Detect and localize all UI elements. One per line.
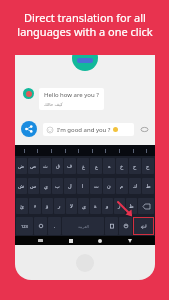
button[interactable]: ي [40, 178, 51, 194]
staticText: ق [56, 163, 60, 169]
staticText: ل [68, 183, 72, 189]
button[interactable]: ب [52, 178, 63, 194]
button[interactable]: ت [90, 178, 102, 194]
button[interactable]: و [102, 198, 113, 214]
button[interactable]: ئ [16, 198, 28, 214]
staticText: ص [30, 163, 37, 169]
button[interactable] [73, 147, 83, 155]
button[interactable]: م [116, 178, 128, 194]
button[interactable]: ق [52, 158, 63, 174]
staticText: و [106, 203, 109, 209]
staticText: Hello how are you ? [44, 91, 99, 99]
button[interactable]: ض [16, 158, 27, 174]
button[interactable] [114, 147, 124, 155]
staticText: ي [44, 183, 48, 189]
button[interactable] [87, 147, 97, 155]
staticText: ؤ [46, 203, 49, 209]
button[interactable]: 123 [16, 217, 33, 235]
staticText: ت [94, 183, 99, 189]
button[interactable]: Share [21, 121, 37, 137]
staticText: ب [55, 183, 60, 189]
staticText: ع [95, 163, 98, 169]
staticText: ، [54, 224, 56, 229]
button[interactable]: I'm good and you ? [47, 123, 130, 136]
button[interactable]: ه [103, 158, 115, 174]
button[interactable] [46, 147, 56, 155]
staticText: ى [82, 203, 86, 209]
button[interactable]: ح [129, 158, 141, 174]
button[interactable]: ة [90, 198, 101, 214]
staticText: ة [94, 203, 97, 209]
button[interactable]: العربية [62, 217, 104, 235]
button[interactable]: Clipboard [105, 217, 118, 235]
staticText: ج [146, 163, 150, 169]
button[interactable]: ش [16, 178, 27, 194]
button[interactable] [141, 147, 151, 155]
button[interactable]: Enter [134, 218, 153, 234]
button[interactable]: ى [78, 198, 89, 214]
button[interactable]: ك [129, 178, 141, 194]
button[interactable]: ظ [126, 198, 137, 214]
staticText: ك [133, 183, 138, 189]
button[interactable]: Back [126, 237, 133, 244]
button[interactable]: Backspace [138, 198, 154, 214]
staticText: ر [58, 203, 61, 209]
button[interactable]: غ [77, 158, 89, 174]
button[interactable]: ث [40, 158, 51, 174]
button[interactable] [32, 147, 42, 155]
staticText: ظ [129, 203, 134, 209]
staticText: م [120, 183, 124, 189]
button[interactable]: Attach [139, 124, 149, 134]
button[interactable] [128, 147, 138, 155]
button[interactable]: ن [103, 178, 115, 194]
button[interactable]: ف [64, 158, 76, 174]
button[interactable]: س [28, 178, 39, 194]
button[interactable] [19, 147, 29, 155]
button[interactable]: Recents [67, 237, 74, 244]
staticText: Direct translation for all languages wit… [17, 10, 153, 39]
staticText: ض [18, 163, 25, 169]
button[interactable]: ط [142, 178, 154, 194]
staticText: ا [82, 183, 84, 189]
staticText: س [30, 183, 37, 189]
button[interactable]: ع [90, 158, 102, 174]
button[interactable]: Keyboard [37, 237, 44, 244]
button[interactable] [100, 147, 110, 155]
staticText: ش [18, 183, 25, 189]
button[interactable]: ؤ [42, 198, 53, 214]
button[interactable]: ، [48, 217, 61, 235]
button[interactable]: Emoji [119, 217, 132, 235]
staticText: ط [146, 183, 151, 189]
button[interactable]: ء [29, 198, 41, 214]
staticText: ن [107, 183, 111, 189]
staticText: I'm good and you ? [57, 126, 111, 134]
button[interactable]: ص [28, 158, 39, 174]
staticText: ئ [20, 203, 24, 209]
staticText: ح [133, 163, 137, 169]
button[interactable]: Home [96, 237, 103, 244]
staticText: ء [34, 203, 37, 209]
staticText: ز [118, 203, 121, 209]
staticText: لا [70, 203, 73, 209]
button[interactable]: Hello how are you ? [23, 88, 104, 110]
staticText: ث [43, 163, 48, 169]
button[interactable]: ا [77, 178, 89, 194]
button[interactable]: ل [64, 178, 76, 194]
staticText: ف [67, 163, 73, 169]
staticText: غ [82, 163, 85, 169]
button[interactable]: ر [54, 198, 65, 214]
staticText: 123 [21, 224, 28, 229]
button[interactable]: ز [114, 198, 125, 214]
staticText: خ [120, 163, 124, 169]
button[interactable]: Home button [76, 254, 94, 272]
button[interactable]: ج [142, 158, 154, 174]
button[interactable]: خ [116, 158, 128, 174]
staticText: ه [108, 163, 111, 169]
button[interactable]: Settings [34, 217, 47, 235]
button[interactable]: لا [66, 198, 77, 214]
staticText: كيف حالك [44, 101, 63, 107]
staticText: العربية [78, 224, 89, 229]
button[interactable] [60, 147, 70, 155]
